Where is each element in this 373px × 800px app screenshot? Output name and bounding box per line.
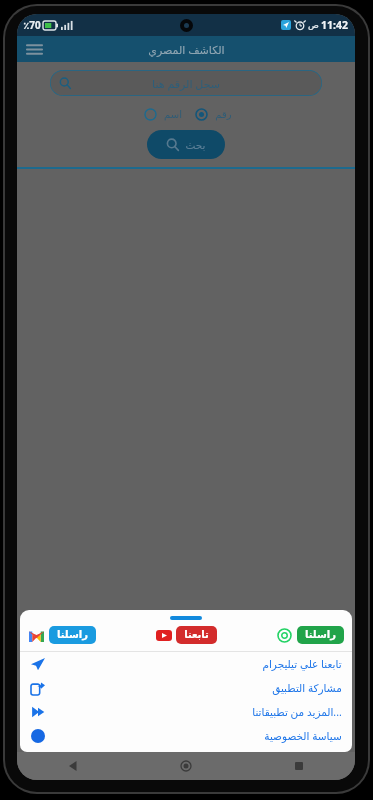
button[interactable]: مشاركة التطبيق <box>20 676 352 700</box>
staticText: الكاشف المصري <box>148 42 225 57</box>
staticText: مشاركة التطبيق <box>272 681 342 695</box>
button[interactable]: سجل الرقم هنا <box>50 70 322 96</box>
button[interactable]: راسلنا <box>276 626 344 644</box>
button[interactable]: Home <box>129 752 242 780</box>
staticText: اسم <box>164 109 182 121</box>
button[interactable]: تابعنا علي تيليجرام <box>20 652 352 676</box>
staticText: ٪70 <box>23 18 41 32</box>
button[interactable]: Back <box>17 752 129 780</box>
button[interactable]: سياسة الخصوصية <box>20 724 352 748</box>
button[interactable]: Recents <box>242 752 355 780</box>
staticText: 11:42 <box>321 18 348 32</box>
button[interactable] <box>191 106 212 123</box>
staticText: بحث <box>185 139 206 151</box>
button[interactable]: Menu <box>21 36 47 62</box>
staticText: تابعنا علي تيليجرام <box>262 657 342 671</box>
button[interactable]: المزيد من تطبيقاتنا... <box>20 700 352 724</box>
staticText: سياسة الخصوصية <box>264 729 342 743</box>
staticText: ص <box>308 20 319 30</box>
button[interactable]: تابعنا <box>155 626 217 644</box>
staticText: المزيد من تطبيقاتنا... <box>252 705 342 719</box>
button[interactable] <box>140 106 161 123</box>
button[interactable]: راسلنا <box>28 626 96 644</box>
staticText: تابعنا <box>184 629 209 641</box>
staticText: سجل الرقم هنا <box>152 76 220 91</box>
button[interactable]: بحث <box>147 130 225 159</box>
staticText: راسلنا <box>305 629 336 641</box>
staticText: رقم <box>215 109 232 121</box>
staticText: راسلنا <box>57 629 88 641</box>
